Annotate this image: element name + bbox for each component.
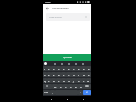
- button[interactable]: Keyboard tool: [72, 62, 79, 65]
- staticText: 7: [73, 67, 75, 70]
- button[interactable]: 8: [76, 66, 81, 71]
- staticText: P: [88, 73, 90, 76]
- button[interactable]: L: [81, 78, 86, 83]
- button[interactable]: N: [78, 84, 83, 89]
- button[interactable]: Keyboard tool: [79, 62, 86, 65]
- button[interactable]: Enter: [83, 90, 91, 95]
- button[interactable]: 2: [47, 66, 51, 71]
- staticText: 1: [44, 67, 46, 70]
- button[interactable]: R: [56, 72, 61, 77]
- staticText: H: [68, 79, 70, 82]
- staticText: AJOUTER: [63, 56, 72, 59]
- staticText: E: [53, 73, 55, 76]
- button[interactable]: O: [81, 72, 86, 77]
- staticText: N: [80, 85, 82, 88]
- staticText: J: [73, 79, 74, 82]
- staticText: 5: [63, 67, 65, 70]
- staticText: Z: [48, 73, 50, 76]
- staticText: 0: [88, 67, 90, 70]
- staticText: 4: [58, 67, 60, 70]
- button[interactable]: P: [86, 72, 91, 77]
- button[interactable]: Back: [43, 4, 52, 13]
- staticText: M: [87, 79, 90, 82]
- button[interactable]: S: [47, 78, 51, 83]
- button[interactable]: Y: [66, 72, 71, 77]
- button[interactable]: 5: [61, 66, 66, 71]
- staticText: Code promo: [49, 16, 62, 19]
- button[interactable]: Keyboard tool: [58, 62, 65, 65]
- staticText: K: [78, 79, 80, 82]
- staticText: Y: [68, 73, 70, 76]
- button[interactable]: V: [68, 84, 73, 89]
- staticText: ?123: [44, 91, 49, 94]
- button[interactable]: 1: [43, 66, 47, 71]
- staticText: U: [73, 73, 75, 76]
- button[interactable]: AJOUTER: [43, 54, 91, 61]
- staticText: 9: [83, 67, 85, 70]
- button[interactable]: Keyboard tool: [65, 62, 72, 65]
- button[interactable]: H: [66, 78, 71, 83]
- button[interactable]: 0: [86, 66, 91, 71]
- button[interactable]: Shift: [43, 84, 52, 89]
- staticText: Add promotion: [52, 7, 69, 10]
- staticText: Q: [44, 79, 46, 82]
- staticText: ↵: [86, 91, 89, 94]
- button[interactable]: Backspace: [83, 84, 91, 89]
- button[interactable]: W: [52, 84, 58, 89]
- button[interactable]: Home: [59, 96, 75, 102]
- staticText: T: [63, 73, 65, 76]
- button[interactable]: 3: [51, 66, 56, 71]
- button[interactable]: 6: [66, 66, 71, 71]
- button[interactable]: Z: [47, 72, 51, 77]
- staticText: 2: [48, 67, 50, 70]
- staticText: F: [58, 79, 60, 82]
- staticText: S: [48, 79, 50, 82]
- staticText: 6: [68, 67, 70, 70]
- button[interactable]: ,: [50, 90, 55, 95]
- button[interactable]: A: [43, 72, 47, 77]
- staticText: G: [63, 79, 65, 82]
- button[interactable]: Recents: [75, 96, 91, 102]
- button[interactable]: M: [86, 78, 91, 83]
- staticText: L: [83, 79, 85, 82]
- staticText: .: [80, 91, 81, 94]
- staticText: B: [75, 85, 77, 88]
- staticText: O: [83, 73, 85, 76]
- button[interactable]: Code promo: [46, 13, 90, 21]
- staticText: D: [53, 79, 55, 82]
- button[interactable]: Keyboard tool: [51, 62, 58, 65]
- button[interactable]: T: [61, 72, 66, 77]
- button[interactable]: X: [58, 84, 63, 89]
- button[interactable]: 9: [81, 66, 86, 71]
- staticText: ,: [52, 91, 53, 94]
- button[interactable]: .: [78, 90, 83, 95]
- button[interactable]: E: [51, 72, 56, 77]
- button[interactable]: Google: [44, 62, 47, 65]
- staticText: W: [54, 85, 57, 88]
- staticText: R: [58, 73, 60, 76]
- button[interactable]: D: [51, 78, 56, 83]
- staticText: 16:07: [45, 1, 51, 4]
- button[interactable]: G: [61, 78, 66, 83]
- button[interactable]: Back: [43, 96, 59, 102]
- button[interactable]: ?123: [43, 90, 50, 95]
- staticText: C: [65, 85, 67, 88]
- staticText: X: [60, 85, 62, 88]
- button[interactable]: 7: [71, 66, 76, 71]
- button[interactable]: I: [76, 72, 81, 77]
- button[interactable]: F: [56, 78, 61, 83]
- button[interactable]: 4: [56, 66, 61, 71]
- staticText: 8: [78, 67, 80, 70]
- button[interactable]: Q: [43, 78, 47, 83]
- staticText: ⇧: [46, 85, 49, 88]
- button[interactable]: B: [73, 84, 78, 89]
- staticText: 3: [53, 67, 55, 70]
- button[interactable]: K: [76, 78, 81, 83]
- button[interactable]: C: [63, 84, 68, 89]
- button[interactable]: J: [71, 78, 76, 83]
- staticText: ⌫: [85, 85, 89, 88]
- button[interactable]: U: [71, 72, 76, 77]
- staticText: A: [44, 73, 46, 76]
